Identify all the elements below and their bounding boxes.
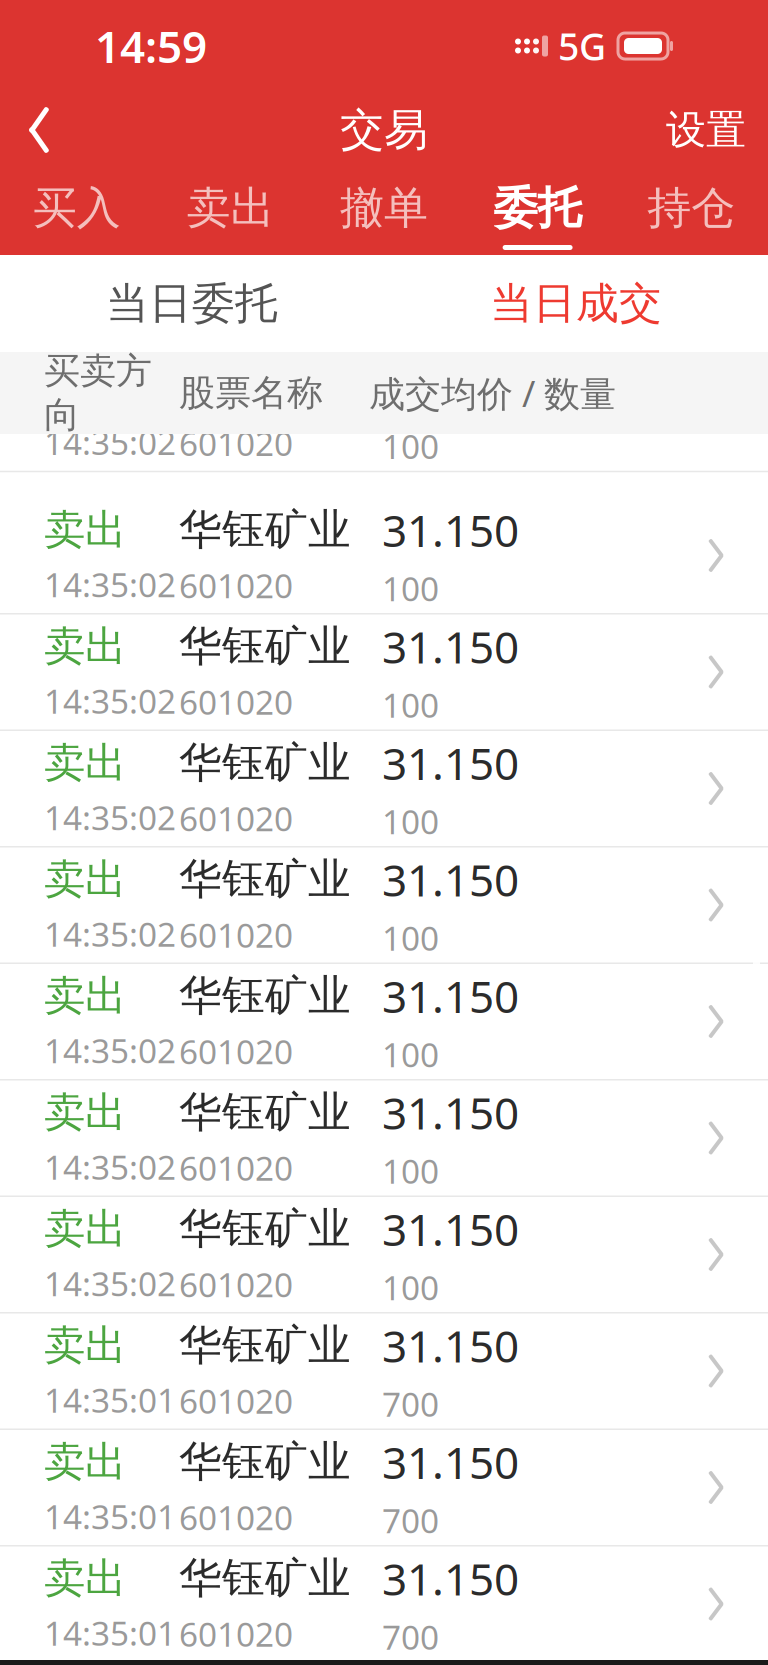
staticText: 14:35:02 <box>44 562 176 607</box>
staticText: 601020 <box>179 1379 293 1423</box>
staticText: 华钰矿业 <box>179 361 351 414</box>
staticText: 601020 <box>179 680 293 724</box>
button[interactable]: 卖出 <box>0 1430 768 1546</box>
staticText: 华钰矿业 <box>179 1086 351 1139</box>
staticText: 14:59 <box>95 17 207 75</box>
staticText: 100 <box>382 683 439 727</box>
staticText: 卖出 <box>186 181 274 235</box>
staticText: 卖出 <box>44 621 126 672</box>
staticText: 卖出 <box>44 1553 126 1604</box>
staticText: 华钰矿业 <box>179 1203 351 1255</box>
staticText: 14:35:02 <box>44 1028 176 1073</box>
staticText: 撤单 <box>340 181 428 235</box>
staticText: 14:35:02 <box>44 795 176 840</box>
staticText: 31.150 <box>382 1316 519 1375</box>
button[interactable]: 卖出 <box>0 1080 768 1197</box>
staticText: 卖出 <box>44 1087 126 1138</box>
staticText: 31.150 <box>382 358 519 417</box>
staticText: 华钰矿业 <box>179 620 351 673</box>
staticText: 601020 <box>179 1612 293 1656</box>
staticText: 卖出 <box>44 362 126 413</box>
staticText: 100 <box>382 1149 439 1193</box>
staticText: 14:35:02 <box>44 420 176 464</box>
button[interactable]: 卖出 <box>0 731 768 847</box>
button[interactable]: 卖出 <box>0 847 768 964</box>
staticText: 601020 <box>179 1495 293 1539</box>
button[interactable]: 撤单 <box>307 171 461 255</box>
staticText: 股票名称 <box>179 371 323 415</box>
staticText: 卖出 <box>44 1436 126 1487</box>
staticText: 100 <box>382 799 439 843</box>
staticText: 卖出 <box>44 737 126 788</box>
staticText: 31.150 <box>382 501 519 559</box>
staticText: 601020 <box>179 796 293 840</box>
staticText: 31.150 <box>382 1433 519 1491</box>
staticText: 601020 <box>179 1262 293 1306</box>
staticText: 卖出 <box>44 1320 126 1371</box>
staticText: 交易 <box>340 103 428 157</box>
staticText: 31.150 <box>382 1549 519 1608</box>
staticText: 5G <box>558 21 606 71</box>
staticText: 卖出 <box>44 1203 126 1254</box>
staticText: 华钰矿业 <box>179 853 351 906</box>
staticText: 14:35:02 <box>44 1145 176 1189</box>
staticText: 卖出 <box>44 504 126 555</box>
button[interactable]: 卖出 <box>0 1197 768 1313</box>
staticText: 700 <box>382 1615 439 1659</box>
button[interactable]: 持仓 <box>614 171 768 255</box>
staticText: 100 <box>382 1265 439 1309</box>
staticText: 成交均价 / 数量 <box>369 369 616 417</box>
staticText: 14:35:02 <box>44 679 176 723</box>
button[interactable]: 卖出 <box>0 1546 768 1663</box>
staticText: 14:35:01 <box>44 1494 176 1539</box>
staticText: 卖出 <box>44 854 126 905</box>
staticText: 100 <box>382 1032 439 1076</box>
button[interactable]: 卖出 <box>0 614 768 731</box>
staticText: 华钰矿业 <box>179 1436 351 1488</box>
button[interactable]: 当日委托 <box>0 255 384 352</box>
button[interactable]: 卖出 <box>154 171 307 255</box>
button[interactable]: 委托 <box>461 171 614 255</box>
staticText: 华钰矿业 <box>179 1552 351 1605</box>
staticText: 601020 <box>179 563 293 607</box>
staticText: 持仓 <box>647 181 735 235</box>
staticText: 华钰矿业 <box>179 504 351 556</box>
button[interactable]: 卖出 <box>0 498 768 614</box>
staticText: 100 <box>382 916 439 960</box>
staticText: 601020 <box>179 1146 293 1190</box>
button[interactable]: 卖出 <box>0 964 768 1080</box>
staticText: 31.150 <box>382 850 519 909</box>
staticText: 委托 <box>494 181 582 235</box>
staticText: 31.150 <box>382 617 519 676</box>
staticText: 14:35:01 <box>44 1611 176 1655</box>
staticText: 700 <box>382 1382 439 1426</box>
button[interactable]: 设置 <box>644 92 768 168</box>
staticText: 买卖方向 <box>44 349 152 437</box>
staticText: 华钰矿业 <box>179 970 351 1022</box>
staticText: 当日委托 <box>106 277 278 330</box>
staticText: 华钰矿业 <box>179 737 351 789</box>
staticText: 31.150 <box>382 1200 519 1258</box>
staticText: 601020 <box>179 1029 293 1073</box>
button[interactable]: 卖出 <box>0 1313 768 1430</box>
staticText: 601020 <box>179 913 293 957</box>
staticText: 700 <box>382 1498 439 1542</box>
staticText: 买入 <box>33 181 121 235</box>
staticText: 卖出 <box>44 970 126 1021</box>
staticText: 100 <box>382 424 439 468</box>
button[interactable]: 当日成交 <box>384 255 768 352</box>
staticText: 31.150 <box>382 734 519 792</box>
staticText: 14:35:01 <box>44 1378 176 1422</box>
button[interactable]: 买入 <box>0 171 154 255</box>
staticText: 14:35:02 <box>44 912 176 956</box>
staticText: 601020 <box>179 421 293 465</box>
staticText: 设置 <box>666 105 746 154</box>
staticText: 14:35:02 <box>44 1261 176 1306</box>
staticText: 100 <box>382 566 439 610</box>
staticText: 华钰矿业 <box>179 1319 351 1372</box>
staticText: 31.150 <box>382 1083 519 1142</box>
staticText: 31.150 <box>382 967 519 1025</box>
button[interactable]: 返回 <box>0 92 78 168</box>
staticText: 当日成交 <box>490 277 662 330</box>
